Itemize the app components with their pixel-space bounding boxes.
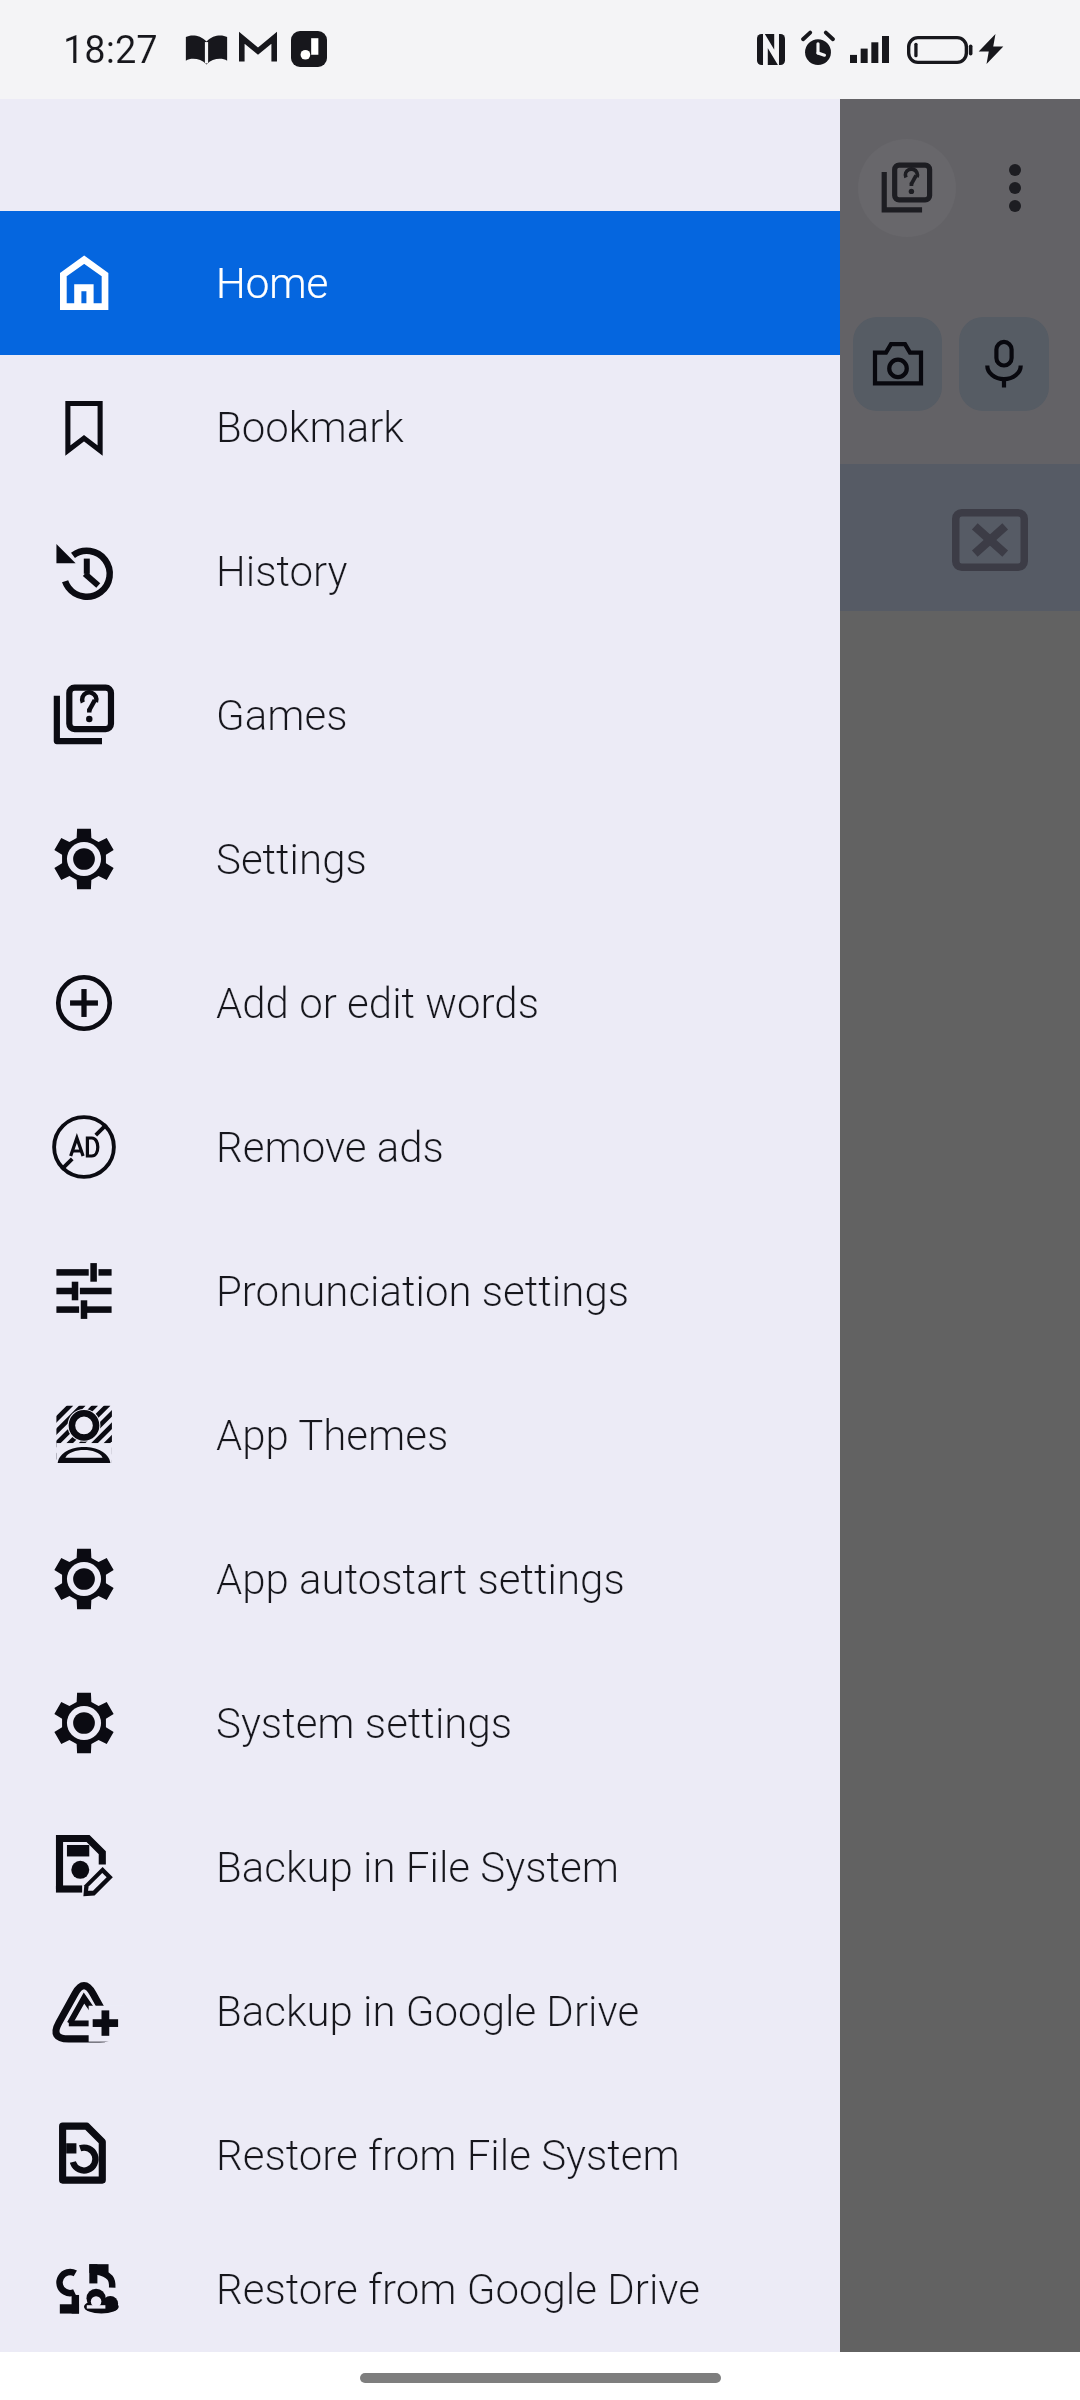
staticText: Pronunciation settings [216, 1267, 629, 1316]
staticText: Remove ads [216, 1123, 444, 1172]
button[interactable]: Home [0, 211, 840, 355]
button[interactable]: Camera [853, 317, 942, 411]
button[interactable]: History [0, 499, 840, 643]
button[interactable]: Games [0, 643, 840, 787]
staticText: Restore from File System [216, 2131, 680, 2180]
button[interactable]: Restore from File System [0, 2083, 840, 2227]
button[interactable]: Remove ads [0, 1075, 840, 1219]
staticText: 18:27 [63, 28, 158, 73]
staticText: Backup in Google Drive [216, 1987, 640, 2036]
button[interactable]: App Themes [0, 1363, 840, 1507]
staticText: Settings [216, 835, 367, 884]
staticText: Restore from Google Drive [216, 2265, 700, 2314]
button[interactable]: App autostart settings [0, 1507, 840, 1651]
button[interactable]: More options [966, 139, 1064, 237]
button[interactable]: Close [940, 500, 1040, 580]
staticText: Bookmark [216, 403, 404, 452]
button[interactable]: Voice input [959, 317, 1049, 411]
staticText: Backup in File System [216, 1843, 619, 1892]
button[interactable]: Pronunciation settings [0, 1219, 840, 1363]
staticText: Home [216, 259, 329, 308]
button[interactable]: Add or edit words [0, 931, 840, 1075]
staticText: History [216, 547, 348, 596]
button[interactable]: Backup in File System [0, 1795, 840, 1939]
button[interactable]: Bookmark [0, 355, 840, 499]
staticText: App Themes [216, 1411, 449, 1460]
button[interactable]: System settings [0, 1651, 840, 1795]
staticText: Games [216, 691, 348, 740]
button[interactable]: Restore from Google Drive [0, 2227, 840, 2352]
staticText: Add or edit words [216, 979, 539, 1028]
button[interactable]: Games [858, 139, 956, 237]
staticText: System settings [216, 1699, 513, 1748]
staticText: App autostart settings [216, 1555, 625, 1604]
button[interactable]: Backup in Google Drive [0, 1939, 840, 2083]
button[interactable]: Settings [0, 787, 840, 931]
